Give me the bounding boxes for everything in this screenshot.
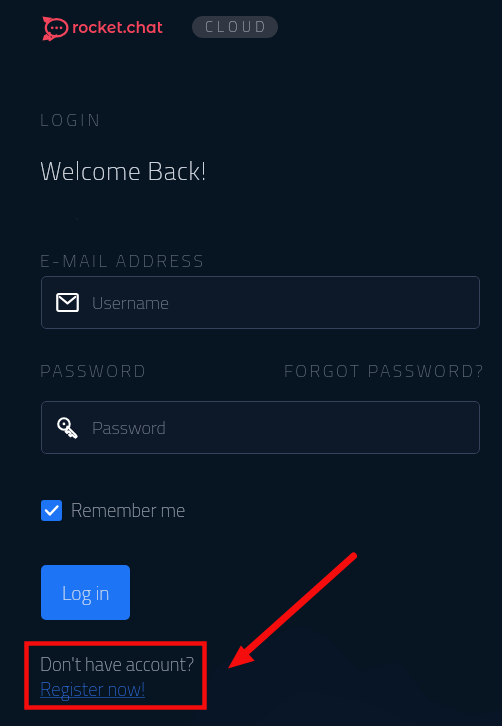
button[interactable]: Remember me xyxy=(41,496,186,524)
button[interactable]: Username xyxy=(41,276,480,329)
button[interactable]: rocket.chat xyxy=(41,14,163,43)
staticText: Don't have account? xyxy=(40,650,195,678)
staticText: Username xyxy=(92,289,170,316)
staticText: E-MAIL ADDRESS xyxy=(40,247,206,274)
other: Password xyxy=(56,416,79,439)
staticText: Welcome Back! xyxy=(40,152,208,190)
other: Username xyxy=(56,291,79,314)
button[interactable]: CLOUD xyxy=(192,16,278,38)
staticText: Register now! xyxy=(40,675,146,703)
staticText: Password xyxy=(92,414,166,441)
staticText: LOGIN xyxy=(40,106,103,133)
button[interactable]: FORGOT PASSWORD? xyxy=(284,357,486,384)
staticText: rocket.chat xyxy=(72,18,163,37)
staticText: Remember me xyxy=(71,496,186,524)
staticText: PASSWORD xyxy=(40,357,148,384)
staticText: FORGOT PASSWORD? xyxy=(284,357,486,384)
staticText: Log in xyxy=(62,578,110,608)
button[interactable]: Log in xyxy=(41,565,130,620)
staticText: CLOUD xyxy=(205,16,269,38)
button[interactable]: Password xyxy=(41,401,480,454)
button[interactable]: Register now! xyxy=(40,675,146,703)
